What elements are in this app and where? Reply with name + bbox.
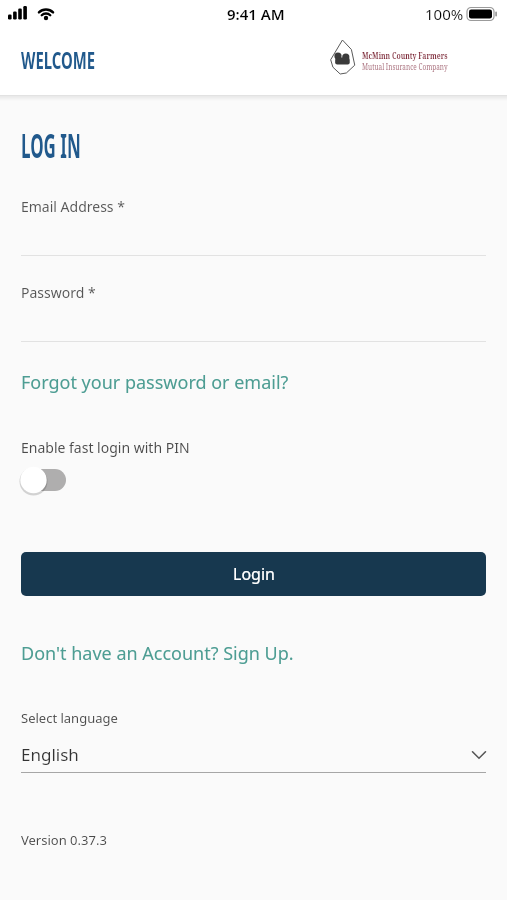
button[interactable]: Login	[21, 552, 486, 596]
button[interactable]: Select language	[21, 709, 486, 773]
button[interactable]: Don't have an Account? Sign Up.	[21, 641, 294, 666]
button[interactable]: Email Address *	[21, 197, 486, 256]
button[interactable]	[18, 465, 68, 495]
button[interactable]: Forgot your password or email?	[21, 370, 289, 395]
staticText: 9:41 AM	[227, 4, 285, 24]
staticText: WELCOME	[21, 43, 95, 76]
staticText: McMinn County Farmers	[362, 49, 448, 61]
staticText: Email Address *	[21, 197, 125, 216]
staticText: Password *	[21, 283, 96, 302]
staticText: Select language	[21, 709, 118, 727]
staticText: Login	[233, 563, 275, 585]
staticText: English	[21, 743, 79, 766]
staticText: 100%	[425, 4, 464, 24]
staticText: Version 0.37.3	[21, 831, 107, 849]
staticText: Mutual Insurance Company	[362, 61, 448, 73]
staticText: LOG IN	[21, 122, 81, 168]
staticText: Enable fast login with PIN	[21, 438, 190, 457]
button[interactable]: Password *	[21, 283, 486, 342]
